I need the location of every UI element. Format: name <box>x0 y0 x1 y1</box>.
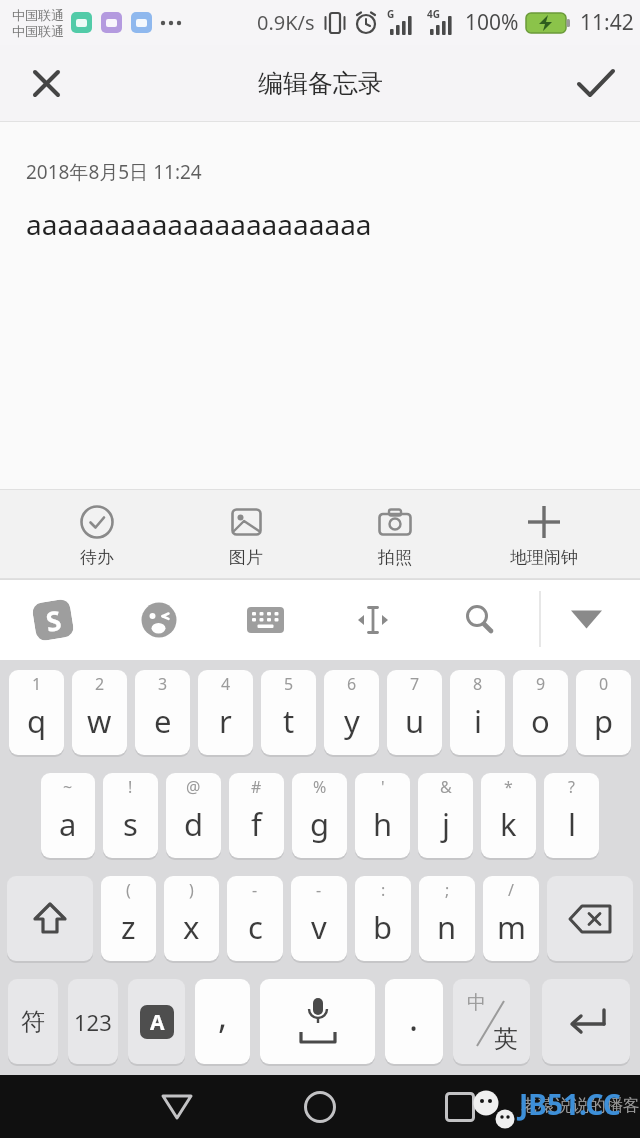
staticText: g <box>310 803 330 845</box>
button[interactable]: * <box>481 773 536 858</box>
staticText: q <box>27 700 47 742</box>
button[interactable] <box>24 61 68 105</box>
staticText: G <box>387 7 395 21</box>
staticText: 0 <box>599 673 609 695</box>
staticText: 4G <box>427 7 440 21</box>
staticText: m <box>497 906 526 948</box>
staticText: ~ <box>63 776 73 798</box>
button[interactable] <box>260 979 375 1064</box>
button[interactable]: @ <box>166 773 221 858</box>
button[interactable]: ) <box>164 876 219 961</box>
button[interactable]: ( <box>101 876 156 961</box>
button[interactable]: 4 <box>198 670 253 755</box>
button[interactable]: & <box>418 773 473 858</box>
button[interactable] <box>542 979 630 1064</box>
staticText: s <box>123 803 138 845</box>
staticText: h <box>373 803 393 845</box>
staticText: 100% <box>465 8 519 37</box>
button[interactable] <box>7 876 93 961</box>
staticText: r <box>219 700 232 742</box>
staticText: 拍照 <box>378 547 412 568</box>
staticText: a <box>59 803 77 845</box>
button[interactable]: 地理闹钟 <box>469 490 618 578</box>
button[interactable]: 符 <box>8 979 58 1064</box>
staticText: 图片 <box>229 547 263 568</box>
staticText: 123 <box>74 1007 112 1037</box>
staticText: c <box>248 906 263 948</box>
button[interactable] <box>106 579 212 660</box>
button[interactable]: ~ <box>41 773 95 858</box>
staticText: 编辑备忘录 <box>258 68 383 99</box>
staticText: v <box>311 906 327 948</box>
staticText: 符 <box>21 1007 45 1037</box>
button[interactable]: ! <box>103 773 158 858</box>
staticText: 11:42 <box>580 8 634 37</box>
button[interactable]: A <box>128 979 185 1064</box>
button[interactable]: 图片 <box>171 490 320 578</box>
staticText: e <box>154 700 172 742</box>
button[interactable]: - <box>227 876 283 961</box>
button[interactable] <box>428 1075 492 1138</box>
staticText: ; <box>445 879 450 901</box>
staticText: 9 <box>536 673 546 695</box>
button[interactable]: ' <box>355 773 410 858</box>
staticText: : <box>381 879 386 901</box>
button[interactable]: 中 <box>453 979 530 1064</box>
staticText: z <box>121 906 136 948</box>
staticText: 中 <box>467 991 486 1015</box>
button[interactable] <box>319 579 426 660</box>
button[interactable]: 1 <box>9 670 64 755</box>
staticText: 英 <box>494 1024 518 1054</box>
button[interactable] <box>547 876 633 961</box>
button[interactable] <box>212 579 319 660</box>
button[interactable]: % <box>292 773 347 858</box>
staticText: 4 <box>221 673 231 695</box>
staticText: 待办 <box>80 547 114 568</box>
staticText: 中国联通 <box>12 23 64 39</box>
button[interactable]: ; <box>419 876 475 961</box>
button[interactable]: # <box>229 773 284 858</box>
staticText: 3 <box>158 673 168 695</box>
staticText: l <box>568 803 576 845</box>
staticText: - <box>316 879 322 901</box>
button[interactable]: 123 <box>68 979 118 1064</box>
staticText: @ <box>186 776 201 798</box>
button[interactable]: ? <box>544 773 599 858</box>
staticText: aaaaaaaaaaaaaaaaaaaaaa <box>26 205 372 243</box>
staticText: & <box>440 776 452 798</box>
button[interactable]: S <box>0 579 106 660</box>
button[interactable]: . <box>385 979 443 1064</box>
button[interactable]: 2 <box>72 670 127 755</box>
button[interactable]: 5 <box>261 670 316 755</box>
staticText: 2 <box>95 673 105 695</box>
button[interactable]: 7 <box>387 670 442 755</box>
button[interactable] <box>426 579 533 660</box>
staticText: x <box>183 906 200 948</box>
button[interactable]: , <box>195 979 250 1064</box>
staticText: * <box>504 776 513 798</box>
button[interactable] <box>145 1075 209 1138</box>
staticText: k <box>500 803 517 845</box>
button[interactable] <box>574 61 618 105</box>
button[interactable]: 0 <box>576 670 631 755</box>
staticText: j <box>442 803 450 845</box>
staticText: n <box>437 906 457 948</box>
button[interactable] <box>533 579 640 660</box>
button[interactable]: 9 <box>513 670 568 755</box>
staticText: o <box>531 700 550 742</box>
button[interactable]: 拍照 <box>320 490 469 578</box>
button[interactable]: / <box>483 876 539 961</box>
staticText: ! <box>128 776 133 798</box>
staticText: 0.9K/s <box>257 9 315 36</box>
staticText: 2018年8月5日 11:24 <box>26 159 202 185</box>
staticText: 1 <box>32 673 42 695</box>
button[interactable]: 8 <box>450 670 505 755</box>
button[interactable]: 6 <box>324 670 379 755</box>
button[interactable] <box>288 1075 352 1138</box>
staticText: 6 <box>347 673 357 695</box>
button[interactable]: : <box>355 876 411 961</box>
button[interactable]: 待办 <box>22 490 171 578</box>
button[interactable]: 3 <box>135 670 190 755</box>
staticText: % <box>313 776 327 798</box>
button[interactable]: - <box>291 876 347 961</box>
